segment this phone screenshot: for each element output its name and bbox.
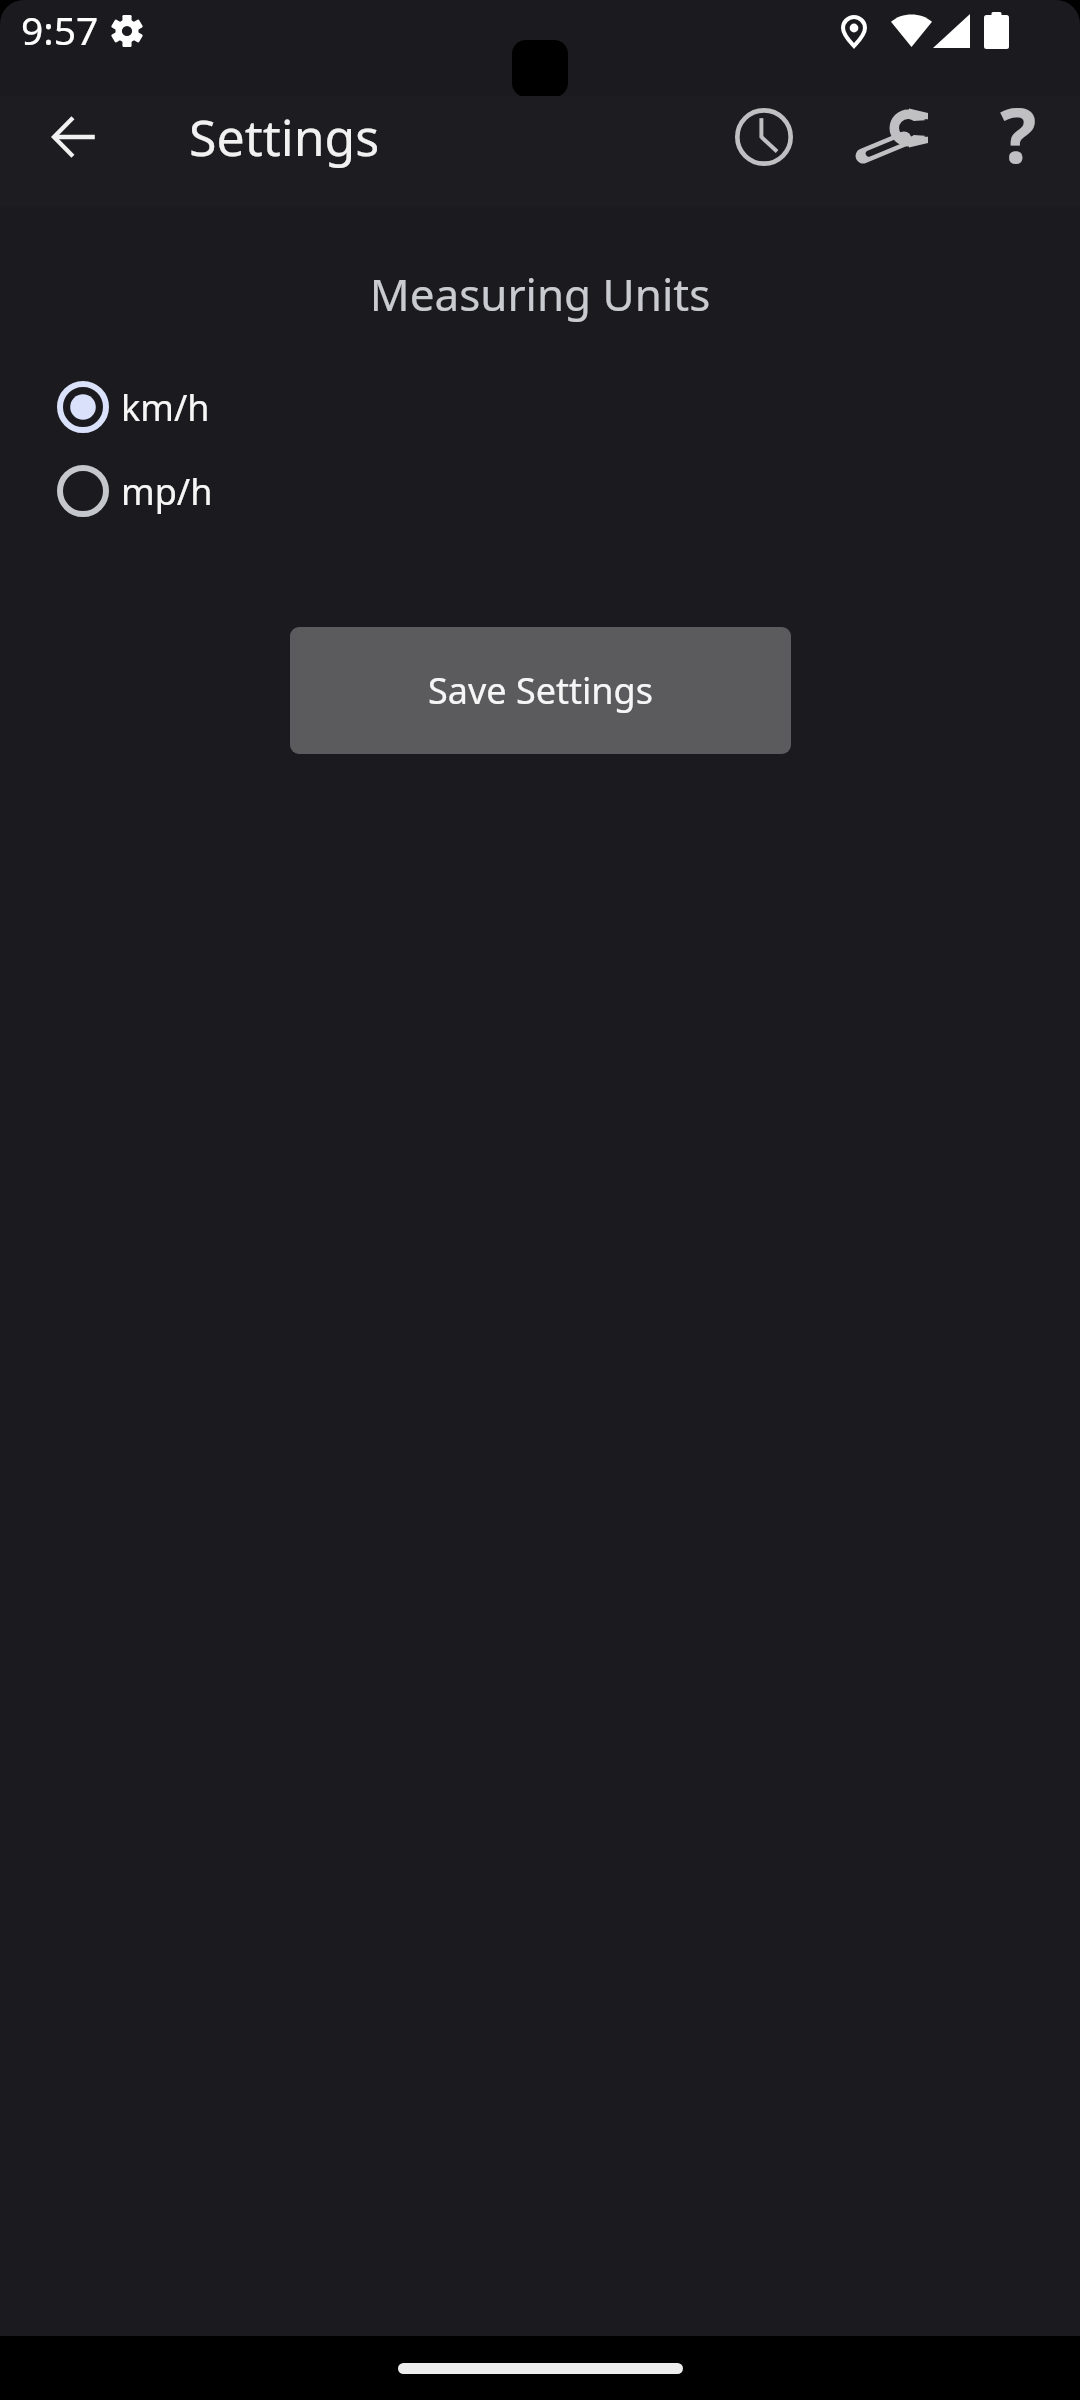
- button[interactable]: Save Settings: [290, 627, 791, 754]
- staticText: Measuring Units: [0, 264, 1080, 324]
- staticText: 9:57: [21, 3, 99, 56]
- button[interactable]: Back: [42, 105, 106, 169]
- staticText: km/h: [121, 383, 210, 432]
- button[interactable]: Help: [954, 81, 1080, 192]
- staticText: ?: [1000, 82, 1037, 186]
- button[interactable]: History: [702, 81, 828, 192]
- button[interactable]: km/h: [0, 381, 1080, 433]
- staticText: Save Settings: [428, 666, 653, 715]
- button[interactable]: mp/h: [0, 465, 1080, 517]
- staticText: Settings: [189, 103, 380, 171]
- button[interactable]: Tools: [828, 81, 954, 192]
- staticText: mp/h: [121, 467, 213, 516]
